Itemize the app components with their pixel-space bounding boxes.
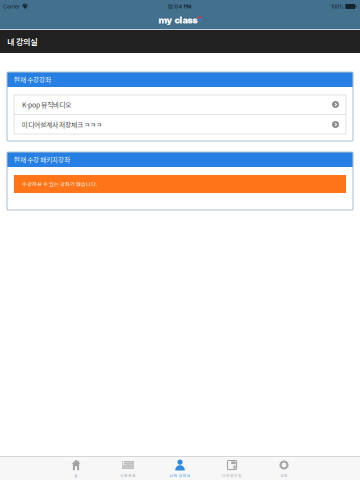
staticText: 미디어설계사 저장체크 ㅋㅋㅋ	[22, 120, 102, 129]
staticText: 나의 강의실	[169, 473, 190, 478]
staticText: 12:04 PM	[167, 3, 191, 10]
staticText: 현재 수강강좌	[14, 75, 51, 84]
staticText: 다운로드함	[222, 473, 242, 478]
button[interactable]: 설정	[258, 456, 310, 480]
staticText: 홈	[74, 473, 78, 478]
staticText: 현재 수강 패키지강좌	[14, 155, 70, 164]
button[interactable]: 다운로드함	[206, 456, 258, 480]
staticText: 내 강의실	[7, 36, 37, 47]
staticText: my class	[158, 14, 197, 26]
staticText: K-pop 뮤직비디오	[22, 100, 71, 109]
button[interactable]: 강좌목록	[102, 456, 154, 480]
button[interactable]: 나의 강의실	[154, 456, 206, 480]
staticText: 강좌목록	[120, 473, 136, 478]
button[interactable]: 홈	[50, 456, 102, 480]
staticText: Carrier	[3, 3, 20, 10]
staticText: 설정	[280, 473, 288, 478]
button[interactable]: K-pop 뮤직비디오	[14, 95, 346, 114]
staticText: 100%	[331, 3, 344, 10]
staticText: 수강하실 수 있는 강좌가 없습니다.	[22, 180, 97, 188]
button[interactable]: 미디어설계사 저장체크 ㅋㅋㅋ	[14, 115, 346, 134]
